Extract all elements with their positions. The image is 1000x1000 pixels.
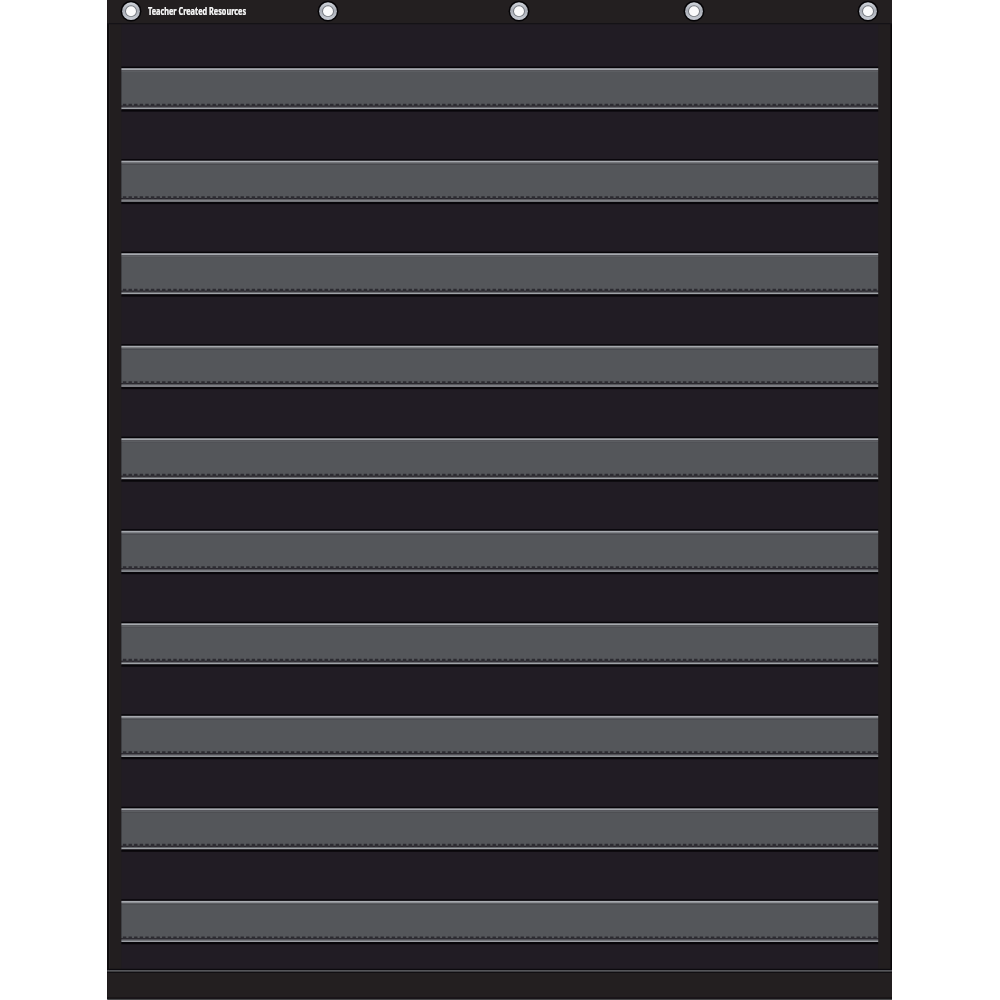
button[interactable]: Card slot 9	[121, 811, 878, 856]
button[interactable]: Card slot 10	[121, 904, 878, 949]
button[interactable]: Card slot 4	[121, 346, 878, 391]
button[interactable]: Card slot 3	[121, 253, 878, 298]
button[interactable]: Teacher Created Resources	[144, 0, 279, 22]
button[interactable]: Card slot 1	[121, 67, 878, 112]
button[interactable]: Card slot 8	[121, 718, 878, 763]
staticText: Teacher Created Resources	[148, 4, 247, 18]
button[interactable]: Card slot 7	[121, 625, 878, 670]
button[interactable]: Card slot 6	[121, 532, 878, 577]
button[interactable]: Card slot 2	[121, 160, 878, 205]
button[interactable]: Card slot 5	[121, 439, 878, 484]
